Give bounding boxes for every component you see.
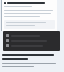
button[interactable]: Feature item 3 xyxy=(6,44,57,47)
button[interactable]: Feature item 2 xyxy=(6,39,57,42)
button[interactable] xyxy=(2,0,57,31)
button[interactable]: Feature item 1 xyxy=(3,31,60,51)
button[interactable]: Feature item 1 xyxy=(6,34,57,37)
